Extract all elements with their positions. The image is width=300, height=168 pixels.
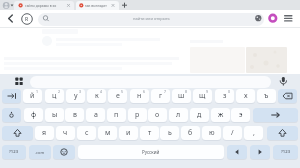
button[interactable]: ь xyxy=(160,126,179,140)
button[interactable] xyxy=(14,1,74,10)
staticText: ю xyxy=(209,128,215,138)
button[interactable]: т xyxy=(140,126,159,140)
button[interactable] xyxy=(278,89,297,103)
staticText: .com xyxy=(35,150,45,155)
staticText: 8 xyxy=(185,89,188,94)
staticText: найти или открыть xyxy=(133,16,170,21)
button[interactable] xyxy=(253,108,298,122)
staticText: 0 xyxy=(228,89,231,94)
button[interactable] xyxy=(53,145,75,159)
staticText: й xyxy=(30,91,35,101)
staticText: как выглядит гне xyxy=(85,3,108,8)
staticText: сайты дорамы в хо xyxy=(25,3,57,8)
button[interactable]: п xyxy=(107,108,126,122)
button[interactable]: ф xyxy=(24,108,43,122)
button[interactable] xyxy=(76,1,119,10)
button[interactable]: / xyxy=(223,126,242,140)
staticText: я xyxy=(42,128,47,138)
button[interactable]: ?123 xyxy=(273,145,298,159)
button[interactable]: ш xyxy=(172,89,191,103)
staticText: э xyxy=(239,110,243,120)
button[interactable]: р xyxy=(128,108,147,122)
staticText: ?123 xyxy=(281,149,291,155)
button[interactable]: я xyxy=(35,126,54,140)
staticText: п xyxy=(114,110,119,120)
staticText: ь xyxy=(168,128,172,138)
staticText: 7 xyxy=(164,89,167,94)
button[interactable] xyxy=(38,13,264,26)
button[interactable]: з xyxy=(215,89,234,103)
staticText: Русский xyxy=(142,149,160,155)
staticText: д xyxy=(197,110,202,120)
staticText: 3 xyxy=(79,89,82,94)
staticText: в xyxy=(73,110,77,120)
button[interactable]: ю xyxy=(202,126,221,140)
button[interactable]: Русский xyxy=(78,145,224,159)
staticText: ж xyxy=(218,110,224,120)
staticText: 9 xyxy=(206,89,209,94)
button[interactable] xyxy=(250,145,270,159)
staticText: ц xyxy=(52,91,57,101)
staticText: ы xyxy=(52,110,58,120)
staticText: а xyxy=(94,110,98,120)
button[interactable]: в xyxy=(65,108,84,122)
staticText: ф xyxy=(31,110,37,120)
button[interactable]: и xyxy=(119,126,138,140)
button[interactable]: ъ xyxy=(257,89,276,103)
button[interactable]: н xyxy=(130,89,149,103)
button[interactable]: д xyxy=(190,108,209,122)
button[interactable]: л xyxy=(169,108,188,122)
staticText: о xyxy=(155,110,160,120)
staticText: 5 xyxy=(121,89,124,94)
button[interactable]: х xyxy=(236,89,255,103)
staticText: ш xyxy=(178,91,185,101)
button[interactable]: ч xyxy=(56,126,75,140)
button[interactable]: й xyxy=(23,89,42,103)
staticText: , xyxy=(253,128,255,138)
button[interactable]: э xyxy=(231,108,250,122)
staticText: ъ xyxy=(264,91,269,101)
button[interactable]: м xyxy=(98,126,117,140)
staticText: ч xyxy=(63,128,68,138)
button[interactable] xyxy=(2,126,33,140)
staticText: 1 xyxy=(36,89,39,94)
button[interactable] xyxy=(267,126,298,140)
staticText: ?123 xyxy=(9,149,19,155)
button[interactable]: щ xyxy=(193,89,212,103)
staticText: л xyxy=(176,110,181,120)
button[interactable] xyxy=(227,145,247,159)
staticText: р xyxy=(135,110,140,120)
button[interactable]: ж xyxy=(211,108,230,122)
staticText: 2 xyxy=(58,89,61,94)
staticText: х xyxy=(244,91,248,101)
staticText: с xyxy=(85,128,89,138)
button[interactable]: у xyxy=(66,89,85,103)
button[interactable] xyxy=(2,108,21,122)
button[interactable]: ?123 xyxy=(2,145,26,159)
staticText: з xyxy=(223,91,227,101)
button[interactable]: а xyxy=(86,108,105,122)
button[interactable]: ц xyxy=(45,89,64,103)
staticText: н xyxy=(137,91,142,101)
staticText: / xyxy=(231,128,234,138)
staticText: щ xyxy=(199,91,206,101)
staticText: б xyxy=(188,128,193,138)
staticText: R xyxy=(25,16,29,23)
button[interactable]: е xyxy=(108,89,127,103)
button[interactable]: ы xyxy=(45,108,64,122)
staticText: е xyxy=(116,91,120,101)
staticText: м xyxy=(105,128,111,138)
button[interactable]: о xyxy=(148,108,167,122)
button[interactable]: к xyxy=(87,89,106,103)
staticText: и xyxy=(126,128,131,138)
button[interactable]: , xyxy=(244,126,263,140)
button[interactable]: г xyxy=(151,89,170,103)
staticText: к xyxy=(95,91,99,101)
button[interactable]: б xyxy=(181,126,200,140)
button[interactable]: с xyxy=(77,126,96,140)
staticText: г xyxy=(159,91,163,101)
button[interactable]: .com xyxy=(29,145,51,159)
staticText: у xyxy=(74,91,78,101)
button[interactable] xyxy=(2,89,21,103)
